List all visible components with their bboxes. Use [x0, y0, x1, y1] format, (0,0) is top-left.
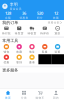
staticText: 购物车	[35, 96, 44, 99]
button[interactable]: 首页	[0, 90, 16, 99]
button[interactable]: 待付款	[0, 26, 13, 35]
button[interactable]: 退款	[51, 26, 64, 35]
staticText: 收藏	[16, 50, 22, 53]
staticText: 常用工具	[2, 38, 18, 43]
staticText: 待付款	[2, 32, 11, 35]
button[interactable]: 待发货	[13, 26, 26, 35]
staticText: 优惠	[3, 61, 9, 64]
button[interactable]: 邀请	[26, 54, 38, 64]
staticText: 待收货	[27, 32, 36, 35]
button[interactable]: 优惠	[0, 54, 13, 64]
button[interactable]: 购物车	[32, 90, 48, 99]
staticText: 客服	[42, 50, 48, 53]
button[interactable]: 待评价	[38, 26, 51, 35]
staticText: 待评价	[40, 32, 49, 35]
staticText: 钱包	[3, 50, 9, 53]
staticText: 查看全部	[48, 21, 60, 24]
button[interactable]: 签到	[13, 54, 26, 64]
staticText: 12	[54, 11, 58, 16]
staticText: 我的订单	[2, 20, 18, 25]
button[interactable]: 地址	[26, 44, 38, 53]
staticText: 520	[37, 11, 43, 16]
button[interactable]: 查看全部	[48, 21, 62, 24]
staticText: 积分	[37, 16, 43, 19]
staticText: 更多服务	[2, 68, 18, 72]
staticText: 分类	[21, 96, 27, 99]
staticText: 地址	[29, 50, 35, 53]
button[interactable]: 收藏	[13, 44, 26, 53]
staticText: 我的	[53, 96, 59, 99]
staticText: 黄金会员	[10, 7, 22, 11]
staticText: 退款	[55, 32, 61, 35]
staticText: 128	[5, 11, 11, 16]
button[interactable]: 128	[0, 11, 16, 19]
staticText: 邀请	[29, 61, 35, 64]
button[interactable]: 我的	[48, 90, 64, 99]
staticText: 待发货	[15, 32, 24, 35]
staticText: 首页	[5, 96, 11, 99]
staticText: 收藏	[53, 16, 59, 19]
button[interactable]: 520	[32, 11, 48, 19]
staticText: 36	[22, 11, 26, 16]
button[interactable]: 36	[16, 11, 32, 19]
staticText: 余额	[5, 16, 11, 19]
button[interactable]: 设置	[51, 44, 64, 53]
button[interactable]: 待收货	[26, 26, 38, 35]
staticText: 优惠券	[19, 16, 28, 19]
button[interactable]: 12	[48, 11, 64, 19]
staticText: 设置	[55, 50, 61, 53]
button[interactable]: 分类	[16, 90, 32, 99]
staticText: 李明	[10, 2, 18, 7]
button[interactable]: 客服	[38, 44, 51, 53]
button[interactable]: 钱包	[0, 44, 13, 53]
staticText: 签到	[16, 61, 22, 64]
